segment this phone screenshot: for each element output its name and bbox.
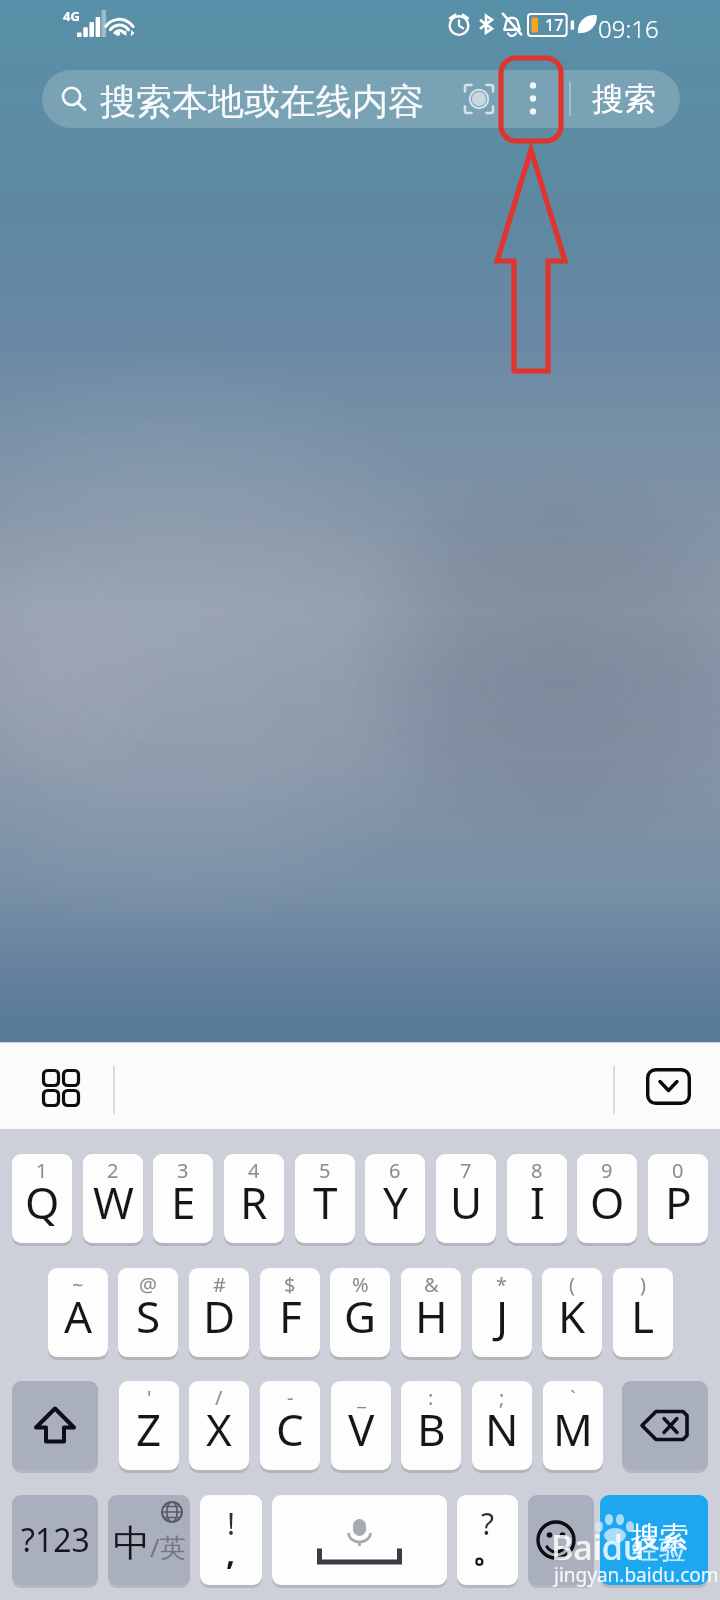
button[interactable]: 搜索本地或在线内容 [42, 70, 680, 128]
button[interactable]: Space [272, 1495, 447, 1585]
button[interactable]: & [401, 1268, 461, 1357]
button[interactable]: 8 [507, 1154, 567, 1243]
button[interactable]: / [189, 1381, 249, 1470]
staticText: C [276, 1399, 304, 1459]
staticText: 搜索 [631, 1519, 689, 1556]
button[interactable]: ! [200, 1495, 262, 1585]
button[interactable]: Backspace [622, 1381, 708, 1470]
button[interactable]: 4 [224, 1154, 284, 1243]
staticText: 4G [63, 7, 80, 25]
button[interactable]: Keyboard options [36, 1063, 86, 1113]
staticText: J [496, 1286, 509, 1346]
button[interactable]: ?123 [12, 1495, 98, 1585]
staticText: P [665, 1172, 692, 1232]
staticText: ' [147, 1384, 152, 1411]
button[interactable]: ; [472, 1381, 532, 1470]
staticText: 搜索 [592, 79, 656, 119]
staticText: # [213, 1271, 226, 1298]
button[interactable]: _ [331, 1381, 391, 1470]
staticText: * [496, 1271, 508, 1298]
staticText: ?123 [21, 1518, 90, 1562]
button[interactable]: 5 [295, 1154, 355, 1243]
button[interactable]: @ [118, 1268, 178, 1357]
staticText: Q [25, 1172, 60, 1232]
button[interactable]: ( [542, 1268, 602, 1357]
staticText: 6 [389, 1157, 401, 1184]
button[interactable]: More options [516, 78, 550, 120]
staticText: 4 [248, 1157, 260, 1184]
staticText: $ [284, 1271, 296, 1298]
button[interactable]: 搜索 [575, 70, 673, 128]
button[interactable]: ' [119, 1381, 179, 1470]
staticText: 8 [531, 1157, 543, 1184]
staticText: 3 [177, 1157, 189, 1184]
staticText: - [287, 1384, 294, 1411]
button[interactable]: 7 [436, 1154, 496, 1243]
staticText: , [226, 1531, 236, 1575]
staticText: ` [570, 1384, 576, 1411]
staticText: ? [481, 1503, 495, 1544]
staticText: Y [383, 1172, 408, 1232]
button[interactable]: - [260, 1381, 320, 1470]
staticText: 搜索本地或在线内容 [100, 79, 424, 124]
button[interactable]: ~ [48, 1268, 108, 1357]
staticText: V [348, 1399, 375, 1459]
button[interactable]: * [472, 1268, 532, 1357]
button[interactable]: 1 [12, 1154, 72, 1243]
staticText: 经验 [632, 1533, 686, 1567]
staticText: A [64, 1286, 93, 1346]
staticText: 中 [113, 1520, 150, 1567]
button[interactable]: 9 [577, 1154, 637, 1243]
staticText: & [424, 1271, 439, 1298]
button[interactable]: : [401, 1381, 461, 1470]
staticText: M [553, 1399, 593, 1459]
button[interactable]: Switch language [108, 1495, 190, 1585]
staticText: @ [139, 1271, 157, 1298]
staticText: ~ [72, 1271, 84, 1298]
button[interactable]: ) [613, 1268, 673, 1357]
staticText: ! [227, 1503, 236, 1544]
staticText: ; [499, 1384, 505, 1411]
staticText: ( [569, 1271, 575, 1298]
button[interactable]: % [330, 1268, 390, 1357]
staticText: B [417, 1399, 446, 1459]
button[interactable]: 0 [648, 1154, 708, 1243]
button[interactable]: Hide keyboard [646, 1068, 691, 1105]
button[interactable]: Image search [459, 79, 499, 119]
staticText: ) [640, 1271, 646, 1298]
staticText: N [485, 1399, 519, 1459]
staticText: O [590, 1172, 625, 1232]
staticText: D [203, 1286, 236, 1346]
button[interactable]: Shift [12, 1381, 98, 1470]
staticText: jingyan.baidu.com [554, 1562, 719, 1588]
staticText: 17 [545, 14, 564, 36]
staticText: 7 [460, 1157, 472, 1184]
staticText: G [344, 1286, 377, 1346]
staticText: K [558, 1286, 586, 1346]
staticText: H [415, 1286, 448, 1346]
staticText: 。 [472, 1531, 504, 1571]
staticText: T [313, 1172, 338, 1232]
staticText: _ [357, 1384, 366, 1411]
button[interactable]: $ [260, 1268, 320, 1357]
button[interactable]: 2 [83, 1154, 143, 1243]
staticText: I [530, 1172, 545, 1232]
button[interactable]: # [189, 1268, 249, 1357]
button[interactable]: 搜索 [600, 1495, 708, 1585]
button[interactable]: 3 [153, 1154, 213, 1243]
staticText: S [136, 1286, 161, 1346]
staticText: R [240, 1172, 268, 1232]
button[interactable]: ` [543, 1381, 603, 1470]
staticText: 5 [319, 1157, 331, 1184]
staticText: 09:16 [598, 12, 659, 45]
button[interactable]: ? [457, 1495, 518, 1585]
staticText: /英 [150, 1529, 186, 1565]
staticText: % [352, 1271, 369, 1298]
button[interactable]: Emoji [528, 1495, 594, 1585]
staticText: 9 [601, 1157, 613, 1184]
button[interactable]: 6 [365, 1154, 425, 1243]
staticText: U [450, 1172, 483, 1232]
staticText: F [279, 1286, 302, 1346]
staticText: L [631, 1286, 655, 1346]
staticText: / [215, 1384, 223, 1411]
